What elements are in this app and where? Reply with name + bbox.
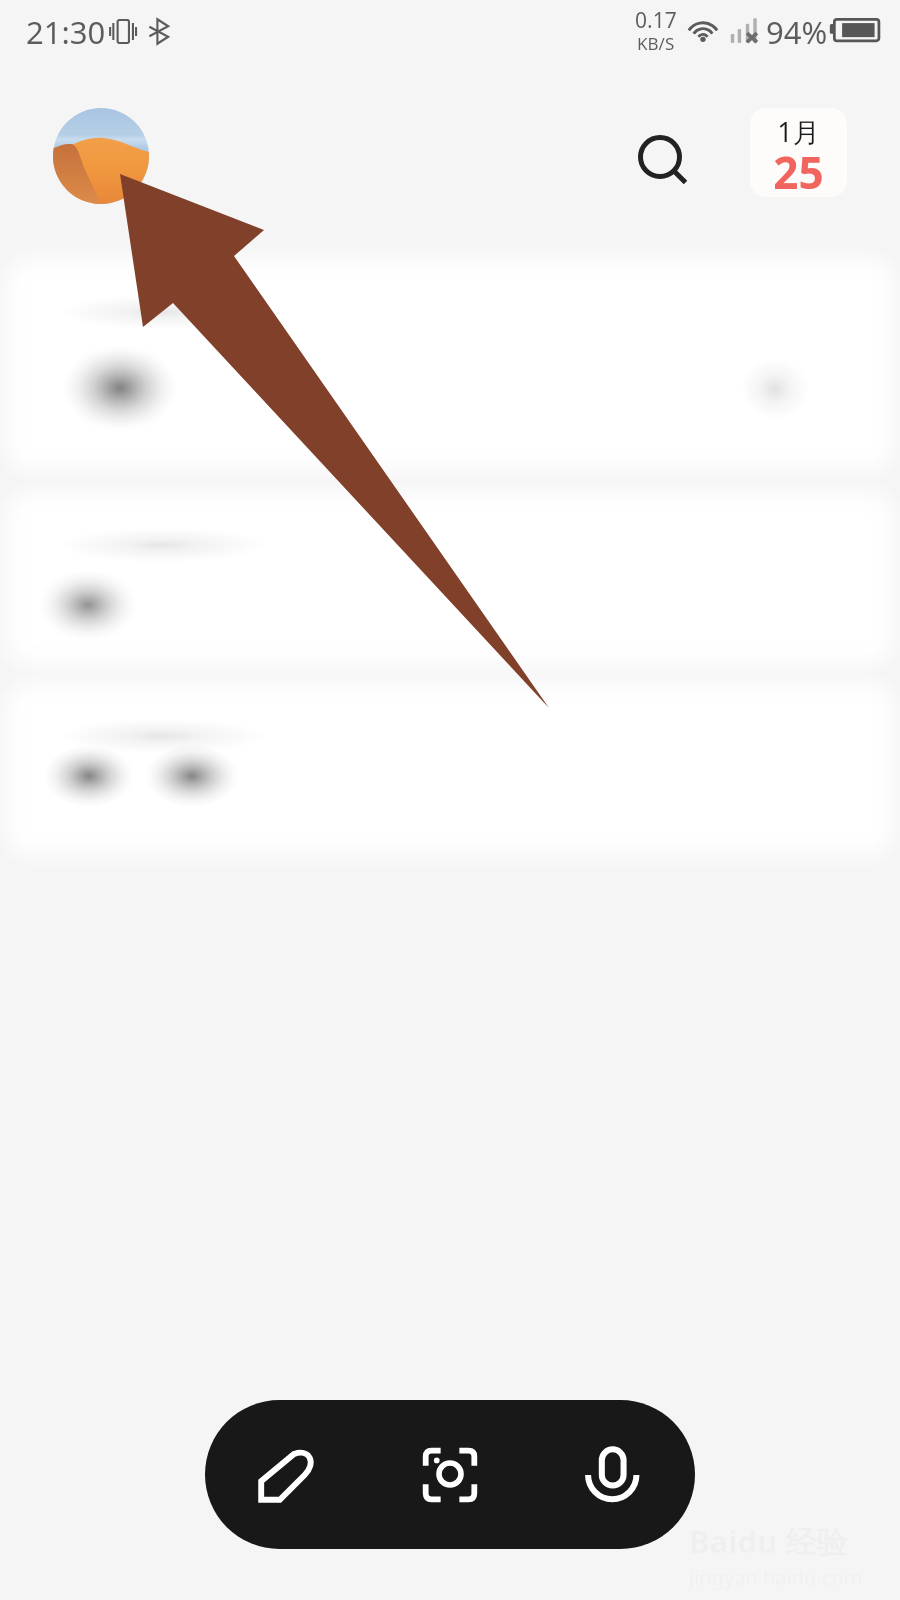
button[interactable]: Account [53, 108, 149, 204]
staticText: 0.17 [635, 6, 677, 35]
staticText: 25 [773, 142, 824, 197]
button[interactable]: Note 1 [12, 264, 888, 466]
button[interactable]: New note [232, 1421, 340, 1529]
staticText: 94% [766, 11, 828, 53]
staticText: KB/S [637, 32, 675, 55]
staticText: 21:30 [26, 11, 106, 53]
button[interactable]: Search [618, 115, 702, 199]
button[interactable]: Calendar [750, 108, 847, 197]
button[interactable]: Note 2 [12, 497, 888, 660]
button[interactable]: Note 3 [12, 688, 888, 850]
staticText: 1月 [777, 113, 820, 150]
button[interactable]: Lens [396, 1421, 504, 1529]
button[interactable]: Voice search [559, 1421, 667, 1529]
